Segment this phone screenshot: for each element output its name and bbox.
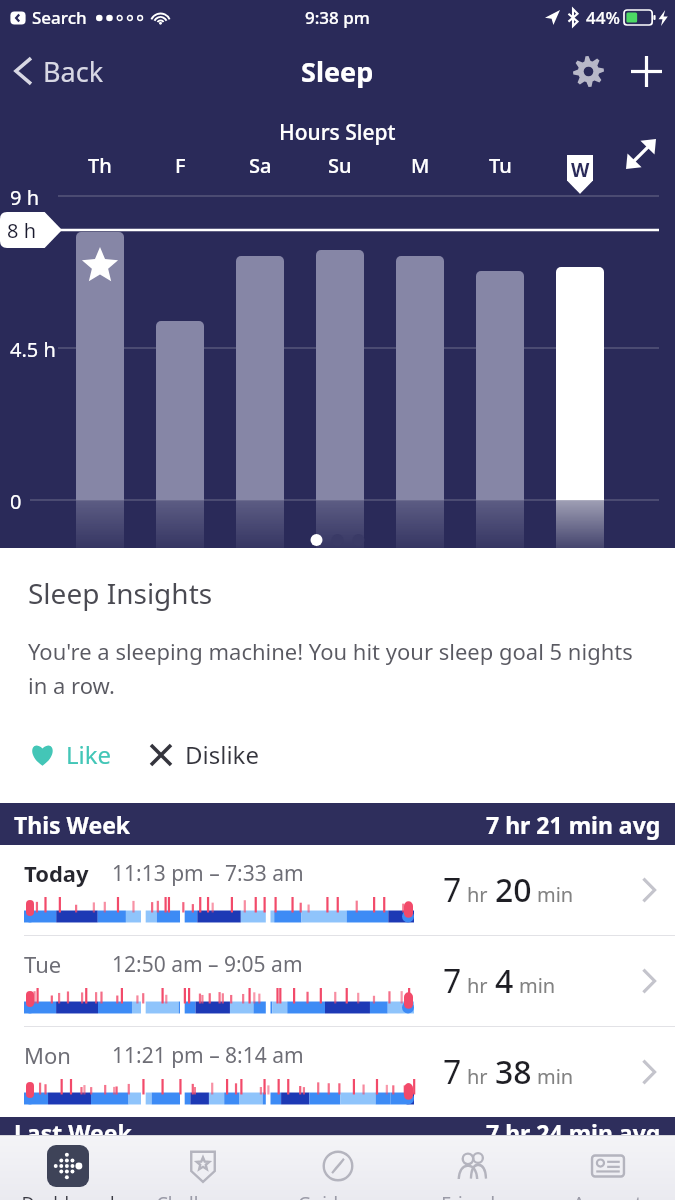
staticText: 9:38 pm [305,6,370,29]
staticText: Search [32,6,87,29]
button[interactable]: Add [617,42,675,100]
staticText: Friends [441,1191,504,1200]
staticText: You're a sleeping machine! You hit your … [28,636,647,700]
staticText: Sa [249,152,272,179]
button[interactable]: Like [28,732,114,777]
staticText: 7 [443,959,462,1003]
staticText: hr [467,972,488,999]
staticText: 7 hr 24 min avg [486,1117,661,1135]
staticText: Dislike [185,738,259,771]
staticText: Like [66,738,112,771]
staticText: This Week [14,809,131,840]
staticText: min [519,972,556,999]
staticText: 44% [586,6,620,29]
staticText: Account [573,1191,642,1200]
staticText: Dashboard [21,1191,115,1200]
staticText: 7 [443,1050,462,1094]
staticText: hr [467,1063,488,1090]
staticText: 11:21 pm – 8:14 am [112,1041,304,1070]
staticText: 8 h [7,217,36,244]
button[interactable]: Challenges [135,1136,270,1200]
button[interactable]: Mon [0,1027,675,1117]
button[interactable]: Dislike [148,732,261,777]
button[interactable]: Account [540,1136,675,1200]
staticText: Tu [489,152,512,179]
staticText: Th [88,152,112,179]
staticText: Tue [24,949,112,979]
button[interactable]: Expand chart [619,132,663,176]
button[interactable]: Back [0,34,118,108]
button[interactable]: Dashboard [0,1136,135,1200]
staticText: Hours Slept [279,118,396,147]
button[interactable]: Settings [559,42,617,100]
staticText: 7 [443,868,462,912]
staticText: hr [467,881,488,908]
staticText: Su [328,152,352,179]
staticText: min [537,1063,574,1090]
button[interactable]: Today [0,845,675,935]
button[interactable]: Tue [0,936,675,1026]
staticText: F [175,152,186,179]
staticText: M [411,152,430,179]
staticText: 20 [495,868,532,912]
staticText: W [571,157,590,183]
staticText: 7 hr 21 min avg [486,809,661,840]
staticText: 12:50 am – 9:05 am [112,950,303,979]
staticText: Today [24,858,112,888]
staticText: Challenges [156,1191,250,1200]
staticText: Sleep [301,53,374,90]
staticText: Sleep Insights [28,574,213,612]
staticText: 38 [495,1050,532,1094]
staticText: Last Week [14,1117,132,1135]
staticText: 0 [10,488,22,515]
staticText: Guidance [298,1191,378,1200]
staticText: min [537,881,574,908]
staticText: 9 h [10,184,39,211]
staticText: 4.5 h [10,336,56,363]
button[interactable]: Guidance [270,1136,405,1200]
button[interactable]: Friends [405,1136,540,1200]
staticText: 4 [495,959,514,1003]
staticText: Mon [24,1040,112,1070]
staticText: 11:13 pm – 7:33 am [112,859,304,888]
staticText: Back [43,53,104,90]
